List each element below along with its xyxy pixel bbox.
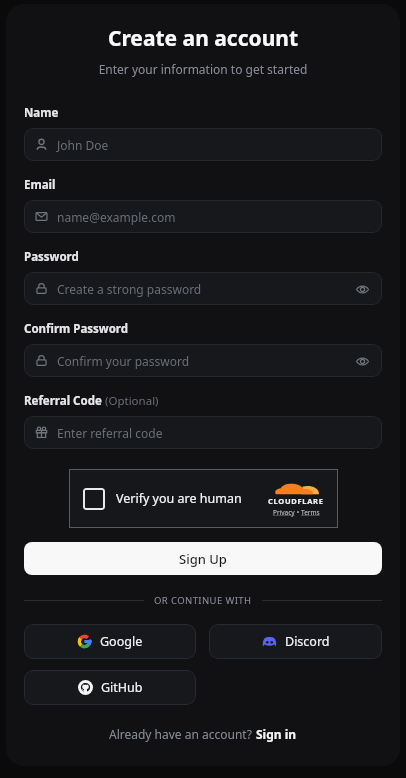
staticText: Referral Code xyxy=(24,393,105,409)
staticText: Name xyxy=(24,105,59,121)
staticText: • xyxy=(295,508,301,517)
staticText: Discord xyxy=(285,633,330,650)
button[interactable]: name@example.com xyxy=(24,200,382,233)
button[interactable]: Terms xyxy=(301,508,320,517)
staticText: CLOUDFLARE xyxy=(268,496,324,506)
staticText: OR CONTINUE WITH xyxy=(154,594,252,607)
button[interactable]: John Doe xyxy=(24,128,382,161)
button[interactable]: GitHub xyxy=(24,670,196,705)
staticText: Sign in xyxy=(256,726,297,742)
staticText: Create a strong password xyxy=(57,281,353,297)
staticText: Already have an account? xyxy=(109,726,256,742)
button[interactable]: Sign in xyxy=(256,726,297,742)
button[interactable]: Discord xyxy=(209,624,382,659)
button[interactable]: Create a strong password xyxy=(24,272,382,305)
button[interactable]: Google xyxy=(24,624,196,659)
button[interactable]: Sign Up xyxy=(24,542,382,575)
button[interactable]: Show password xyxy=(353,352,371,370)
staticText: John Doe xyxy=(57,137,371,153)
staticText: Enter referral code xyxy=(57,425,371,441)
staticText: Create an account xyxy=(24,24,382,53)
staticText: Verify you are human xyxy=(116,490,242,507)
staticText: (Optional) xyxy=(105,393,159,409)
button[interactable]: Verify you are human checkbox xyxy=(83,488,105,510)
staticText: Confirm Password xyxy=(24,321,129,337)
button[interactable]: Verify you are human checkbox xyxy=(69,469,338,528)
staticText: Google xyxy=(100,633,143,650)
staticText: Email xyxy=(24,177,56,193)
button[interactable]: Privacy xyxy=(273,508,295,517)
staticText: Confirm your password xyxy=(57,353,353,369)
staticText: GitHub xyxy=(101,679,143,696)
staticText: Sign Up xyxy=(179,550,227,568)
button[interactable]: Enter referral code xyxy=(24,416,382,449)
staticText: Password xyxy=(24,249,79,265)
staticText: Enter your information to get started xyxy=(24,61,382,77)
button[interactable]: Show password xyxy=(353,280,371,298)
button[interactable]: Confirm your password xyxy=(24,344,382,377)
staticText: name@example.com xyxy=(57,209,371,225)
